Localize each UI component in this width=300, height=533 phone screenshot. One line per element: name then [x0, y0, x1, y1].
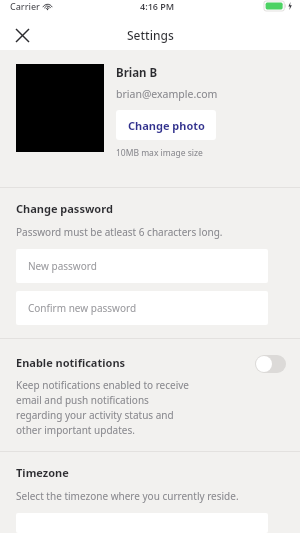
staticText: Password must be atleast 6 characters lo… [16, 225, 223, 239]
staticText: Carrier [10, 0, 40, 12]
staticText: Change photo [128, 118, 205, 133]
button[interactable]: New password [16, 249, 268, 283]
staticText: Enable notifications [16, 355, 126, 370]
button[interactable]: Close [6, 20, 38, 50]
staticText: Change password [16, 201, 113, 216]
staticText: 4:16 PM [140, 0, 175, 12]
staticText: Confirm new password [28, 301, 137, 315]
staticText: Settings [127, 27, 174, 43]
staticText: Timezone [16, 465, 69, 480]
button[interactable]: Change photo [116, 110, 216, 140]
button[interactable]: Enable notifications toggle [255, 355, 286, 373]
staticText: Select the timezone where you currently … [16, 489, 239, 503]
staticText: Keep notifications enabled to receive em… [16, 378, 192, 437]
staticText: 10MB max image size [116, 147, 203, 159]
staticText: New password [28, 259, 97, 273]
staticText: brian@example.com [116, 87, 218, 101]
staticText: Brian B [116, 65, 158, 81]
button[interactable]: Confirm new password [16, 291, 268, 325]
